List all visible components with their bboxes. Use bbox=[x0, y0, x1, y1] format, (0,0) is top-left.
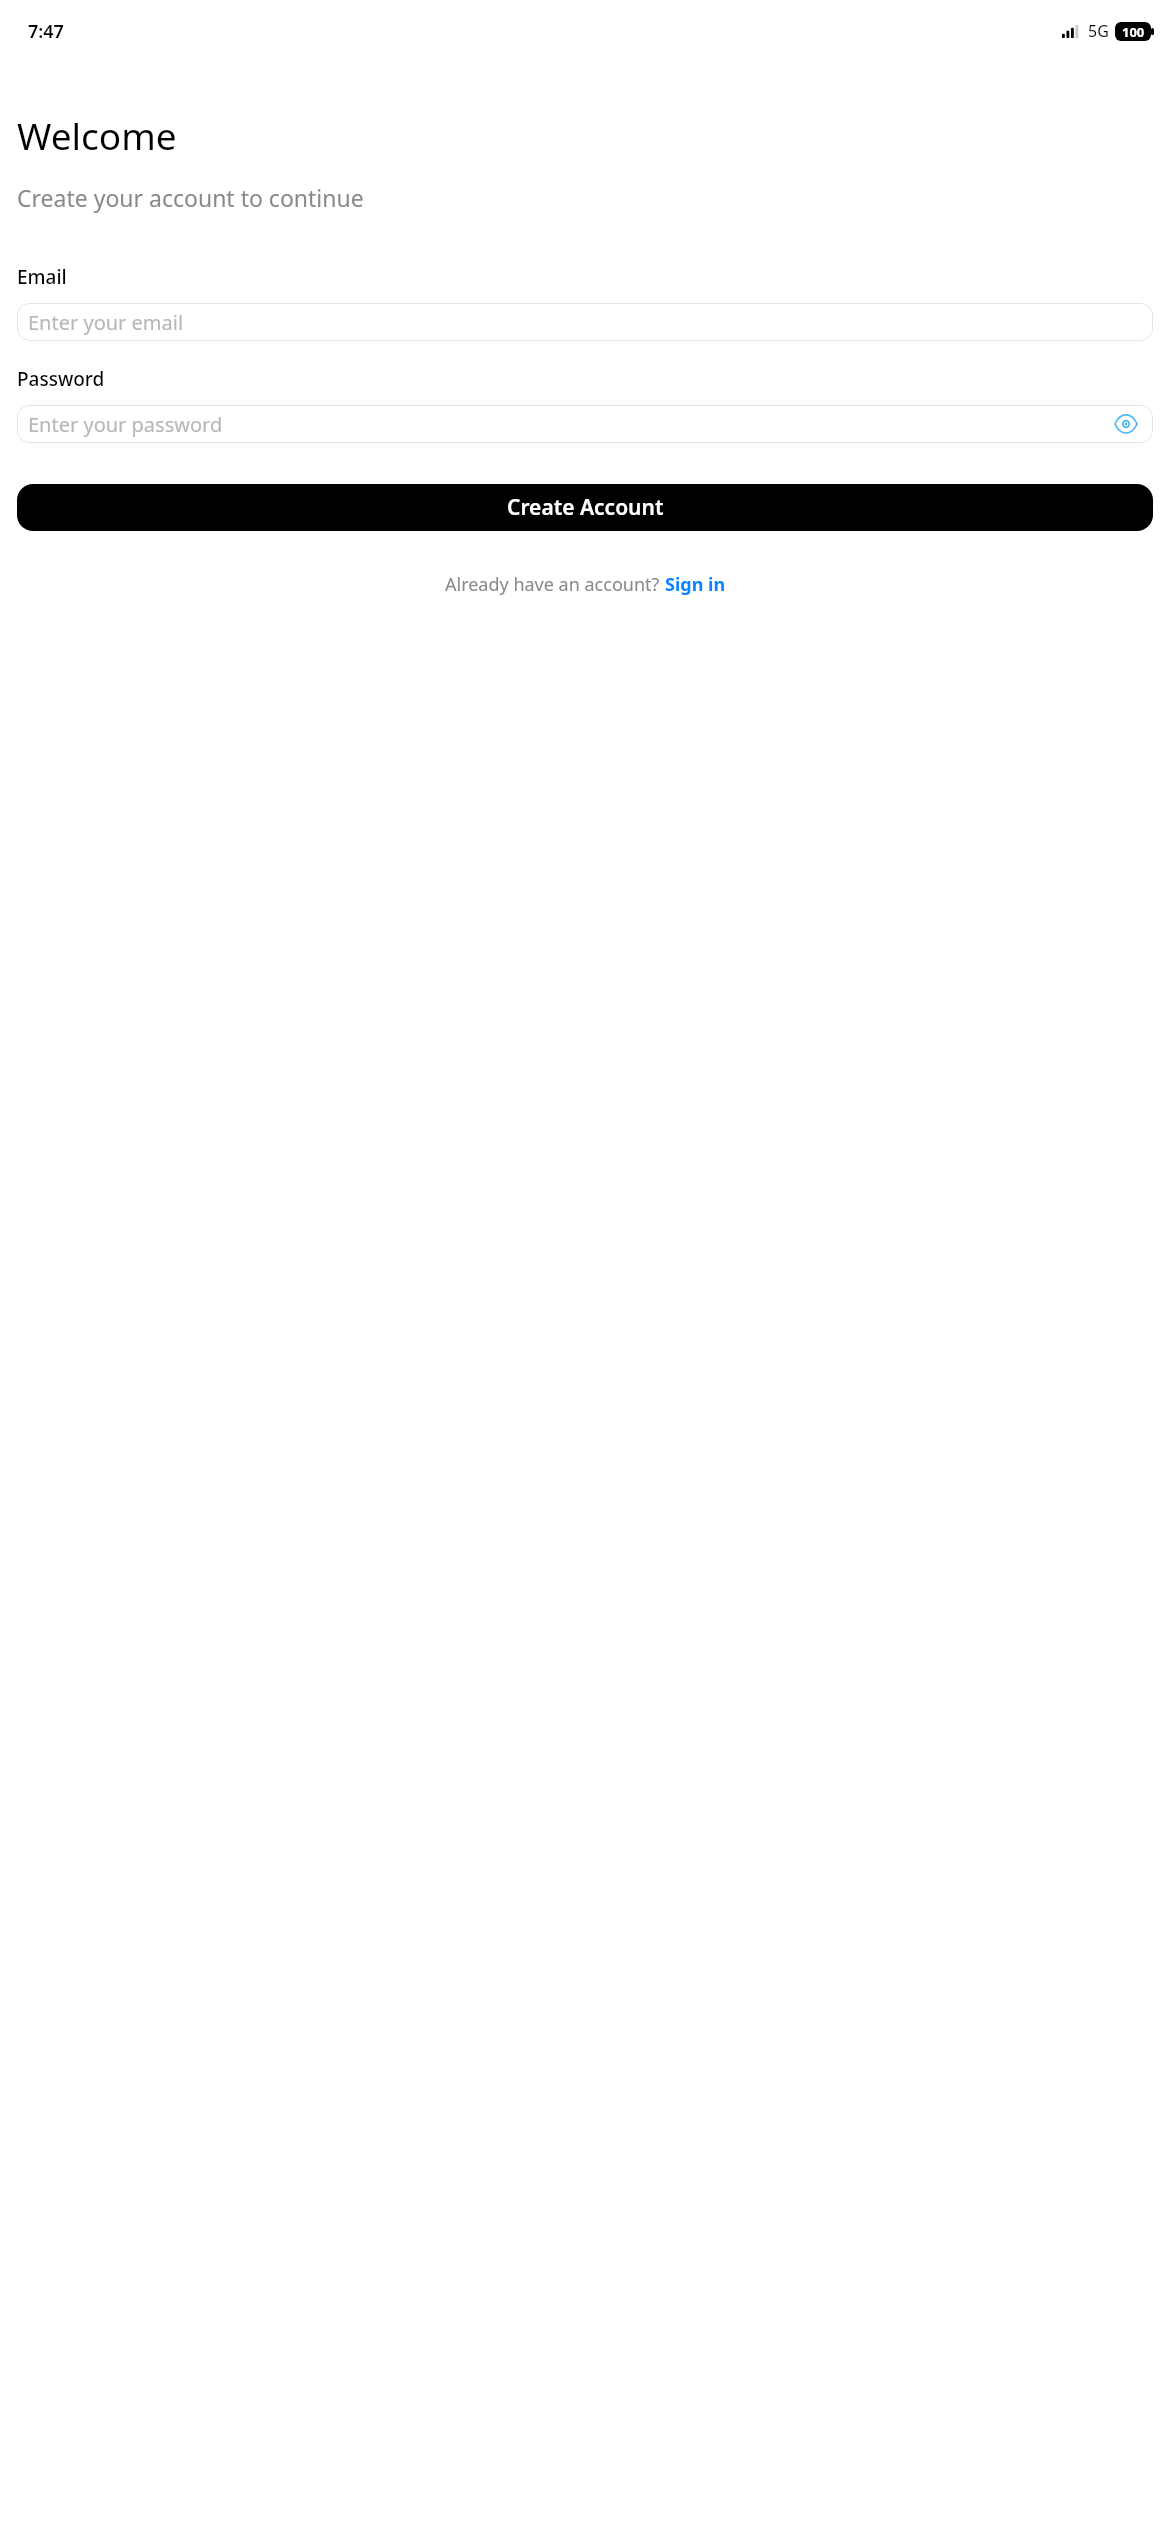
staticText: Password bbox=[17, 366, 105, 392]
button[interactable]: Show password bbox=[1113, 411, 1139, 437]
staticText: Enter your password bbox=[28, 411, 223, 438]
button[interactable]: Sign in bbox=[665, 572, 726, 597]
button[interactable]: Enter your email bbox=[17, 303, 1153, 341]
staticText: Already have an account? bbox=[445, 572, 665, 597]
staticText: 100 bbox=[1122, 23, 1145, 41]
staticText: Enter your email bbox=[28, 309, 184, 336]
staticText: Sign in bbox=[665, 572, 726, 597]
button[interactable]: Create Account bbox=[17, 484, 1153, 531]
staticText: Email bbox=[17, 264, 67, 290]
button[interactable]: Enter your password bbox=[17, 405, 1153, 443]
staticText: Create your account to continue bbox=[17, 182, 960, 213]
staticText: Create Account bbox=[507, 493, 664, 522]
staticText: 5G bbox=[1088, 20, 1109, 42]
staticText: Welcome bbox=[17, 110, 177, 160]
staticText: 7:47 bbox=[28, 19, 64, 44]
